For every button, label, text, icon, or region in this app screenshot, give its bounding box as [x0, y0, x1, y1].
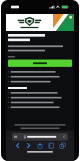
button[interactable]: Forward: [25, 142, 32, 149]
button[interactable]: [12, 133, 68, 141]
button[interactable]: Back: [14, 142, 21, 149]
button[interactable]: Tabs: [59, 142, 66, 149]
button[interactable]: Share: [36, 142, 43, 149]
button[interactable]: Bookmarks: [48, 142, 55, 149]
button[interactable]: [8, 59, 72, 67]
